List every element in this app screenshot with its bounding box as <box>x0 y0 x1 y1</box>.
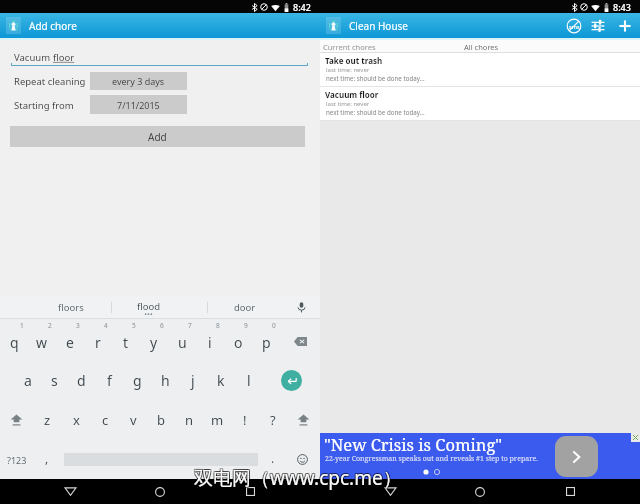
button[interactable]: Emoji <box>284 440 320 479</box>
staticText: 9 <box>244 321 248 330</box>
button[interactable]: 4 <box>84 319 112 360</box>
button[interactable]: 7 <box>168 319 196 360</box>
button[interactable]: s <box>41 360 68 400</box>
button[interactable]: 3 <box>56 319 84 360</box>
staticText: 8 <box>216 321 220 330</box>
staticText: m <box>211 411 224 429</box>
button[interactable]: ?123 <box>0 440 34 479</box>
staticText: door <box>234 301 256 314</box>
button[interactable]: v <box>119 400 147 440</box>
staticText: 1 <box>20 321 24 330</box>
staticText: l <box>247 371 251 390</box>
button[interactable]: h <box>151 360 179 400</box>
staticText: floor <box>53 51 75 64</box>
staticText: 22-year Congressman speaks out and revea… <box>325 454 538 464</box>
button[interactable]: 5 <box>112 319 140 360</box>
staticText: 双电网（www.cpc.me） <box>195 466 403 492</box>
staticText: next time: should be done today... <box>326 74 425 82</box>
staticText: last time: never <box>326 100 370 108</box>
button[interactable]: 1 <box>0 319 28 360</box>
staticText: 4 <box>104 321 108 330</box>
button[interactable]: SMS reminders <box>562 13 586 38</box>
staticText: g <box>133 371 142 390</box>
staticText: . <box>271 450 275 466</box>
staticText: Starting from <box>14 99 74 112</box>
button[interactable]: Home <box>140 479 180 504</box>
staticText: , <box>45 450 49 466</box>
staticText: Add chore <box>29 19 77 33</box>
staticText: x <box>73 411 80 429</box>
button[interactable]: Recent apps <box>230 479 270 504</box>
staticText: ?123 <box>7 454 27 466</box>
staticText: every 3 days <box>112 75 165 87</box>
button[interactable]: k <box>207 360 235 400</box>
button[interactable]: z <box>33 400 62 440</box>
staticText: 双电网（www.cpc.me） <box>193 464 401 490</box>
button[interactable]: ? <box>259 400 287 440</box>
staticText: a <box>24 371 32 390</box>
button[interactable]: x <box>62 400 91 440</box>
button[interactable]: c <box>91 400 119 440</box>
button[interactable]: Close ad <box>631 433 640 442</box>
staticText: 双电网（www.cpc.me） <box>193 465 401 491</box>
button[interactable]: 0 <box>252 319 280 360</box>
button[interactable]: Take out trash <box>320 53 640 86</box>
staticText: 双电网（www.cpc.me） <box>194 465 402 491</box>
button[interactable]: Shift <box>0 400 33 440</box>
staticText: r <box>95 333 101 352</box>
button[interactable]: j <box>179 360 207 400</box>
button[interactable]: Vacuum floor <box>320 87 640 120</box>
button[interactable]: Voice input <box>283 296 320 319</box>
staticText: n <box>185 411 194 429</box>
button[interactable]: door <box>208 296 280 319</box>
button[interactable]: Recent apps <box>550 479 590 504</box>
button[interactable]: a <box>14 360 41 400</box>
staticText: All chores <box>464 42 499 52</box>
button[interactable]: flood <box>112 296 207 319</box>
button[interactable]: g <box>123 360 151 400</box>
button[interactable]: 8 <box>196 319 224 360</box>
button[interactable]: Add <box>10 126 305 147</box>
staticText: 双电网（www.cpc.me） <box>194 464 402 490</box>
button[interactable]: d <box>68 360 95 400</box>
button[interactable]: Shift <box>287 400 320 440</box>
button[interactable]: Next ad <box>555 436 598 477</box>
button[interactable]: Add chore <box>610 13 640 38</box>
staticText: 双电网（www.cpc.me） <box>195 464 403 490</box>
button[interactable]: Back <box>370 479 410 504</box>
button[interactable]: Home <box>460 479 500 504</box>
button[interactable]: n <box>175 400 203 440</box>
staticText: y <box>150 333 158 352</box>
button[interactable]: 7/11/2015 <box>90 95 187 114</box>
button[interactable]: 6 <box>140 319 168 360</box>
staticText: b <box>157 411 165 429</box>
button[interactable]: ! <box>231 400 259 440</box>
staticText: 7 <box>188 321 192 330</box>
staticText: d <box>77 371 86 390</box>
staticText: sms <box>569 23 580 30</box>
button[interactable]: every 3 days <box>90 72 187 90</box>
staticText: 双电网（www.cpc.me） <box>194 466 402 492</box>
button[interactable]: floors <box>0 296 111 319</box>
button[interactable]: l <box>235 360 263 400</box>
staticText: Take out trash <box>325 55 383 66</box>
button[interactable]: 9 <box>224 319 252 360</box>
staticText: z <box>44 411 51 429</box>
staticText: 8:43 <box>613 1 631 13</box>
staticText: 0 <box>272 321 276 330</box>
button[interactable]: 2 <box>28 319 56 360</box>
button[interactable]: Enter <box>263 360 320 400</box>
button[interactable]: . <box>262 440 284 479</box>
button[interactable] <box>60 440 262 479</box>
button[interactable]: f <box>95 360 123 400</box>
button[interactable]: Settings <box>586 13 610 38</box>
button[interactable]: m <box>203 400 231 440</box>
button[interactable]: Back <box>50 479 90 504</box>
staticText: q <box>10 333 19 352</box>
staticText: ? <box>270 411 276 429</box>
button[interactable]: , <box>34 440 60 479</box>
staticText: 5 <box>132 321 136 330</box>
button[interactable]: Backspace <box>280 319 320 360</box>
staticText: 双电网（www.cpc.me） <box>193 466 401 492</box>
button[interactable]: b <box>147 400 175 440</box>
